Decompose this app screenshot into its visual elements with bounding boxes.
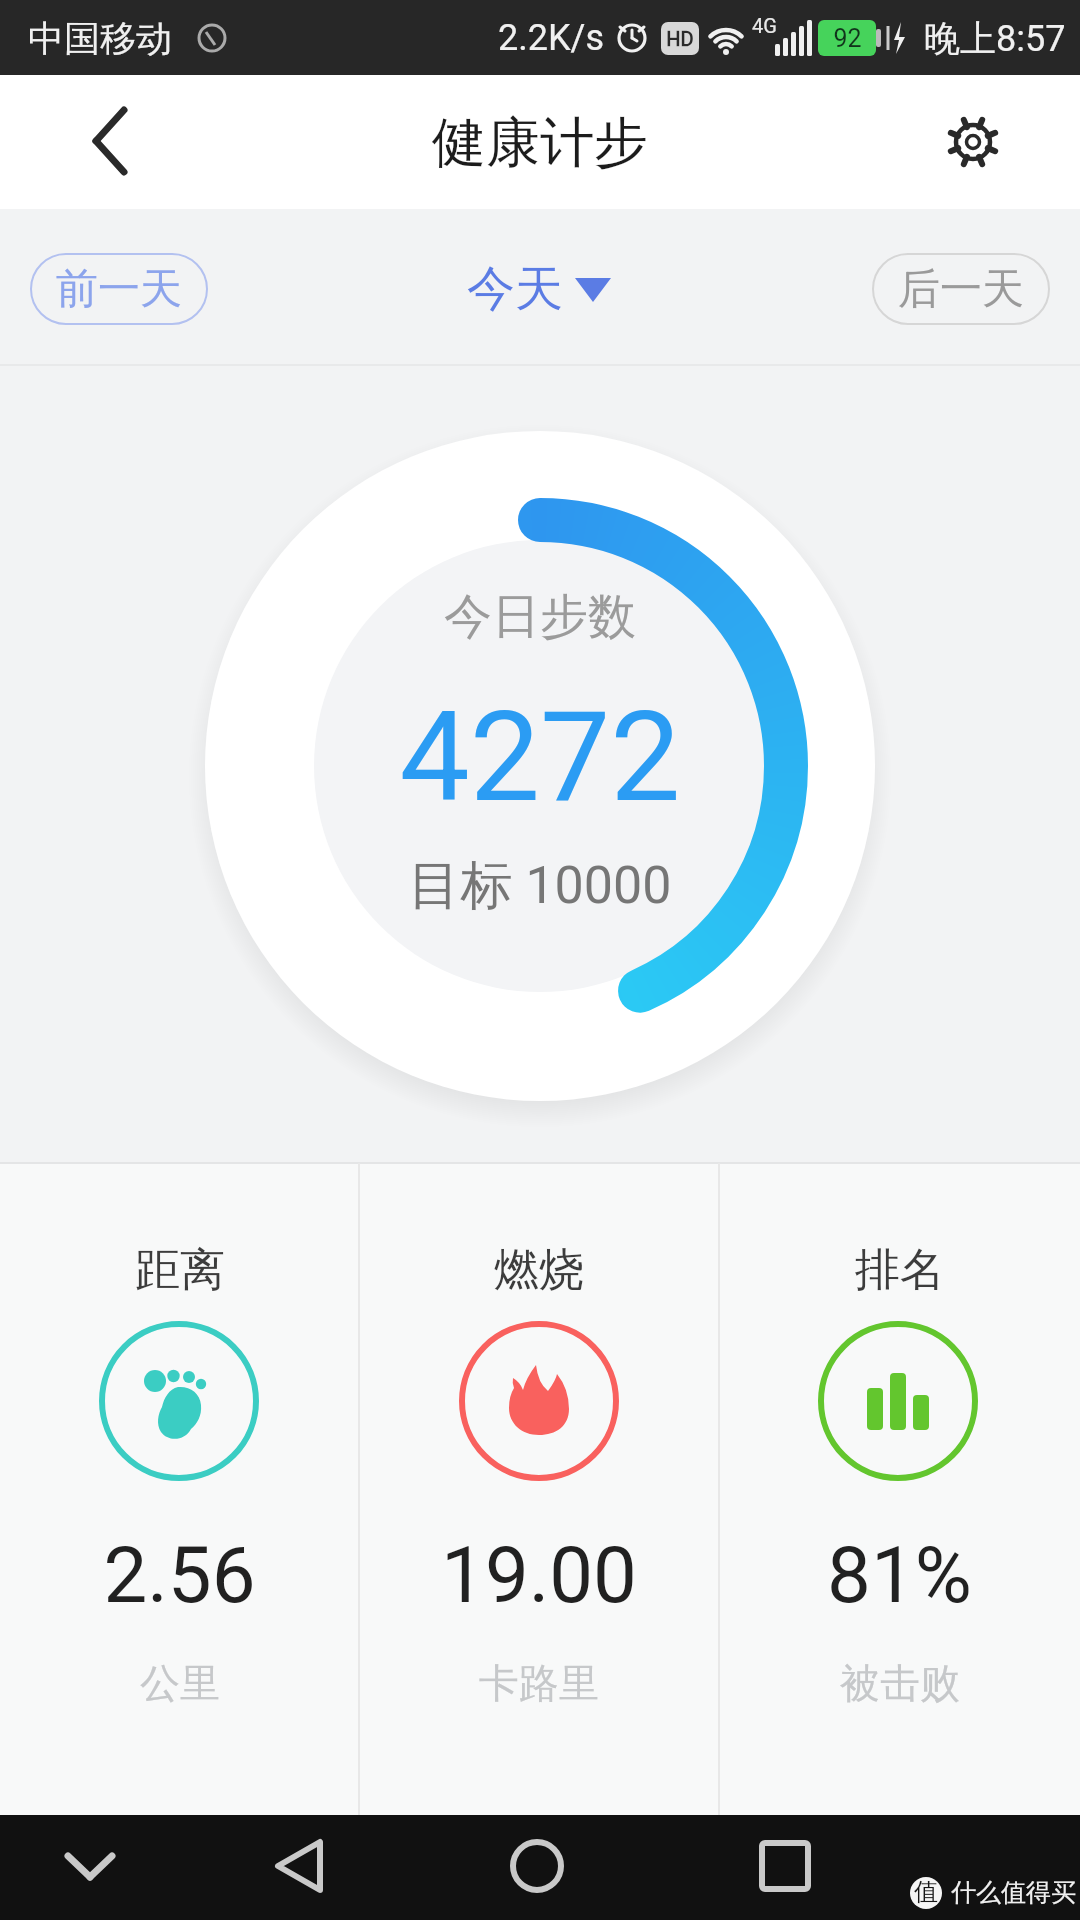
staticText: 今天 [467,259,563,319]
staticText: 健康计步 [432,109,648,177]
button[interactable] [925,95,1021,191]
button[interactable] [735,1818,835,1918]
button[interactable] [40,1818,140,1918]
staticText: 4G [752,14,777,37]
staticText: 中国移动 [28,16,172,61]
staticText: 2.56 [103,1530,256,1621]
button[interactable]: 今天 [467,259,613,319]
button[interactable] [359,1162,719,1815]
staticText: 81% [827,1530,972,1621]
button[interactable] [250,1818,350,1918]
staticText: 值 [914,1877,938,1907]
staticText: 后一天 [898,263,1024,316]
button[interactable]: 前一天 [30,253,208,325]
button[interactable] [487,1818,587,1918]
staticText: 卡路里 [479,1658,599,1708]
button[interactable]: 后一天 [872,253,1050,325]
staticText: 目标 10000 [408,853,672,919]
button[interactable] [60,95,156,191]
staticText: 今日步数 [444,587,636,647]
staticText: 公里 [140,1658,220,1708]
staticText: 晚上8:57 [924,16,1066,60]
staticText: 92 [833,24,862,53]
staticText: 被击败 [840,1658,960,1708]
staticText: 19.00 [441,1530,637,1621]
staticText: 前一天 [56,263,182,316]
button[interactable] [719,1162,1080,1815]
button[interactable] [0,1162,359,1815]
staticText: 2.2K/s [498,17,604,59]
staticText: 燃烧 [494,1242,584,1299]
staticText: 排名 [855,1242,945,1299]
staticText: 4272 [399,684,681,830]
staticText: 距离 [135,1242,225,1299]
staticText: 什么值得买 [951,1877,1076,1908]
staticText: HD [666,27,694,50]
